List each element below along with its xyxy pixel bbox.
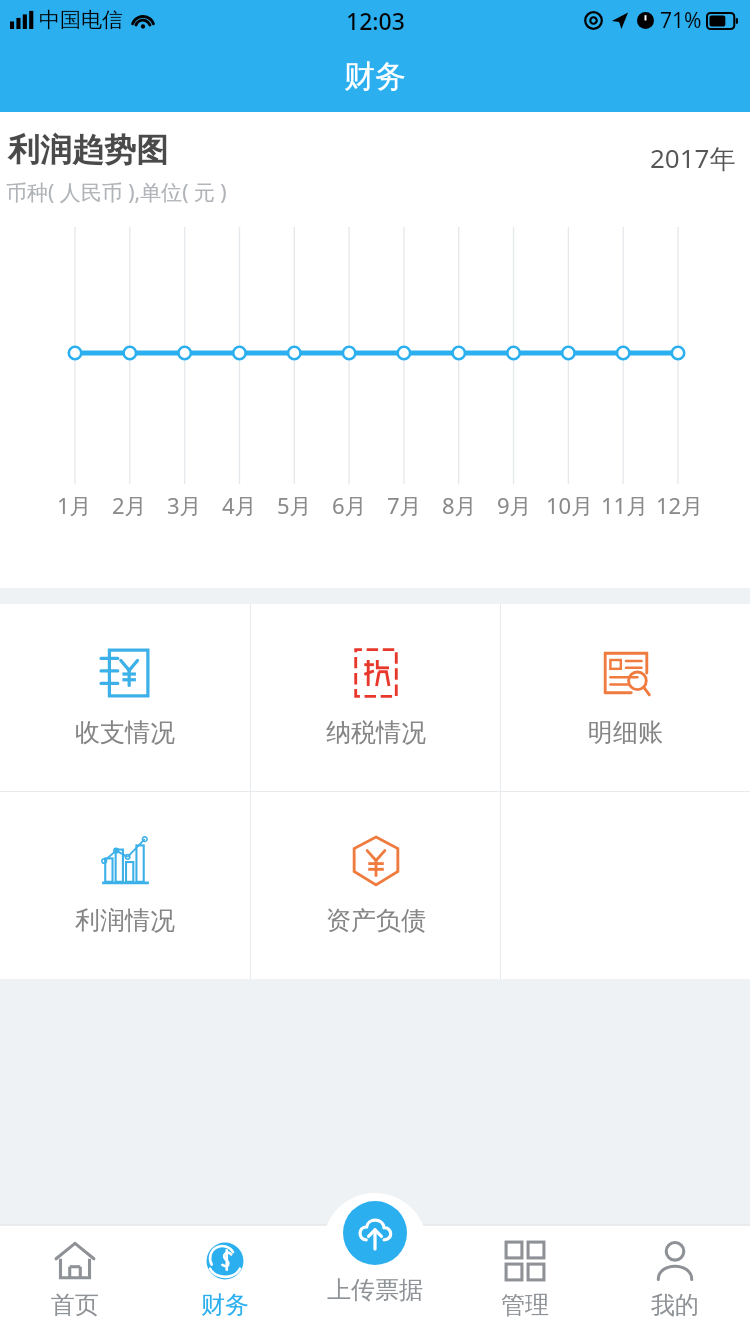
staticText: 首页 [51,1290,99,1320]
staticText: 币种( 人民币 ),单位( 元 ) [6,178,227,207]
button[interactable]: 管理 [450,1225,600,1333]
staticText: 中国电信 [39,7,123,33]
staticText: 上传票据 [327,1275,423,1305]
staticText: 明细账 [588,717,663,748]
staticText: 9月 [497,490,532,520]
staticText: 纳税情况 [326,717,426,748]
staticText: 71% [660,6,702,35]
staticText: 12:03 [346,5,405,36]
staticText: 4月 [222,490,257,520]
button[interactable]: 我的 [600,1225,750,1333]
button[interactable]: 利润情况 [0,792,250,979]
staticText: 1月 [57,490,92,520]
staticText: 管理 [501,1290,549,1320]
button[interactable]: 首页 [0,1225,150,1333]
staticText: 利润趋势图 [8,130,168,170]
staticText: 6月 [332,490,367,520]
staticText: 3月 [167,490,202,520]
staticText: 8月 [442,490,477,520]
staticText: 10月 [546,490,594,520]
button[interactable]: 纳税情况 [251,604,500,791]
staticText: 财务 [344,57,406,96]
staticText: 2月 [112,490,147,520]
staticText: 财务 [201,1290,249,1320]
button[interactable]: 财务 [150,1225,300,1333]
staticText: 11月 [601,490,649,520]
button[interactable]: 上传票据 [327,1201,423,1305]
staticText: 5月 [277,490,312,520]
staticText: 利润情况 [75,905,175,936]
button[interactable]: 资产负债 [251,792,500,979]
button[interactable]: 明细账 [501,604,750,791]
staticText: 我的 [651,1290,699,1320]
staticText: 收支情况 [75,717,175,748]
staticText: 12月 [656,490,704,520]
staticText: 2017年 [650,140,736,176]
button[interactable]: 收支情况 [0,604,250,791]
staticText: 资产负债 [326,905,426,936]
staticText: 7月 [387,490,422,520]
